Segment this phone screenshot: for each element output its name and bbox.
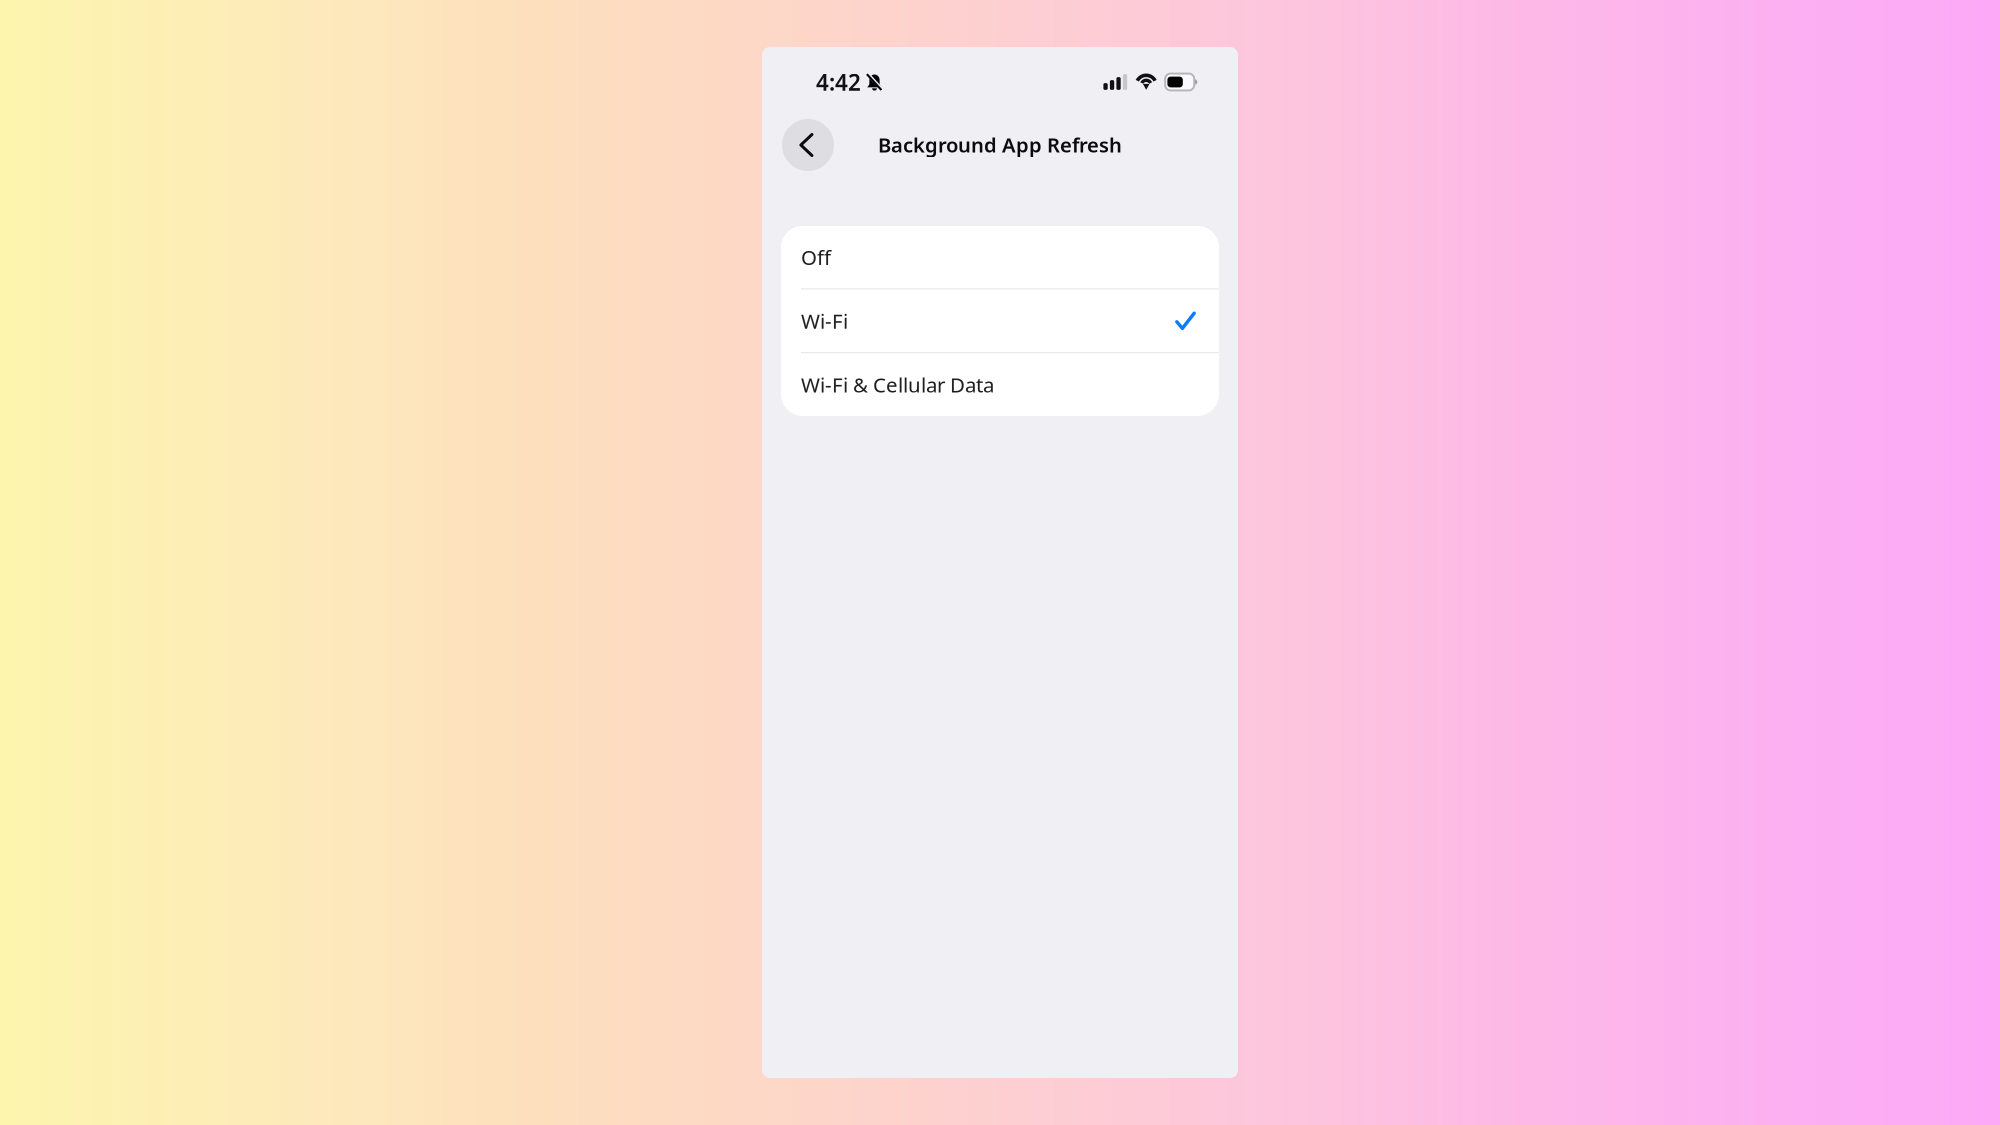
button[interactable]: Wi-Fi [781, 290, 1219, 352]
button[interactable]: Wi-Fi & Cellular Data [781, 353, 1219, 416]
staticText: Wi-Fi [801, 307, 848, 335]
staticText: 4:42 [816, 67, 861, 97]
button[interactable]: Off [781, 226, 1219, 288]
staticText: Off [801, 243, 831, 271]
button[interactable]: Back [782, 119, 834, 171]
staticText: Background App Refresh [878, 131, 1122, 158]
staticText: Wi-Fi & Cellular Data [801, 371, 994, 398]
